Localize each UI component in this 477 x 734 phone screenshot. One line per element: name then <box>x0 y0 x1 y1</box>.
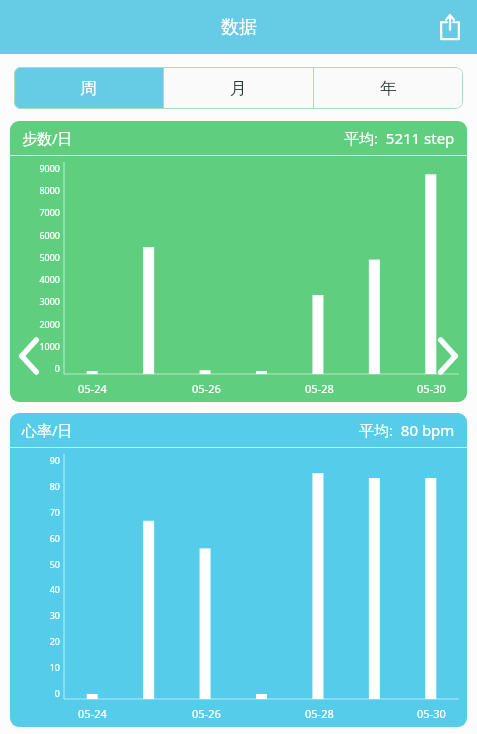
staticText: 心率/日 <box>22 420 73 440</box>
staticText: 80 <box>49 480 60 492</box>
button[interactable]: 月 <box>164 67 313 109</box>
button[interactable]: 年 <box>314 67 463 109</box>
staticText: 3000 <box>39 295 60 307</box>
staticText: 50 <box>49 558 60 570</box>
button[interactable]: Previous period <box>16 336 42 376</box>
staticText: 平均: 80 bpm <box>359 420 455 440</box>
staticText: 8000 <box>39 184 60 196</box>
staticText: 60 <box>49 532 60 544</box>
staticText: 05-30 <box>417 706 446 721</box>
staticText: 90 <box>49 454 60 466</box>
staticText: 0 <box>54 687 60 699</box>
staticText: 40 <box>49 583 60 595</box>
staticText: 月 <box>230 78 247 99</box>
staticText: 0 <box>54 362 60 374</box>
staticText: 数据 <box>221 16 257 39</box>
staticText: 05-26 <box>192 706 221 721</box>
staticText: 5000 <box>39 251 60 263</box>
staticText: 1000 <box>39 340 60 352</box>
staticText: 6000 <box>39 229 60 241</box>
staticText: 05-26 <box>192 381 221 396</box>
staticText: 年 <box>380 78 397 99</box>
staticText: 05-28 <box>305 381 334 396</box>
button[interactable]: Share <box>437 13 463 41</box>
button[interactable]: Next period <box>435 336 461 376</box>
button[interactable]: 周 <box>14 67 163 109</box>
staticText: 70 <box>49 506 60 518</box>
staticText: 20 <box>49 635 60 647</box>
staticText: 9000 <box>39 162 60 174</box>
staticText: 周 <box>80 78 97 99</box>
staticText: 10 <box>49 661 60 673</box>
staticText: 05-24 <box>78 381 107 396</box>
staticText: 步数/日 <box>22 128 73 148</box>
staticText: 平均: 5211 step <box>344 128 455 148</box>
staticText: 2000 <box>39 318 60 330</box>
staticText: 05-24 <box>78 706 107 721</box>
staticText: 30 <box>49 609 60 621</box>
staticText: 4000 <box>39 273 60 285</box>
staticText: 7000 <box>39 206 60 218</box>
staticText: 05-30 <box>417 381 446 396</box>
staticText: 05-28 <box>305 706 334 721</box>
